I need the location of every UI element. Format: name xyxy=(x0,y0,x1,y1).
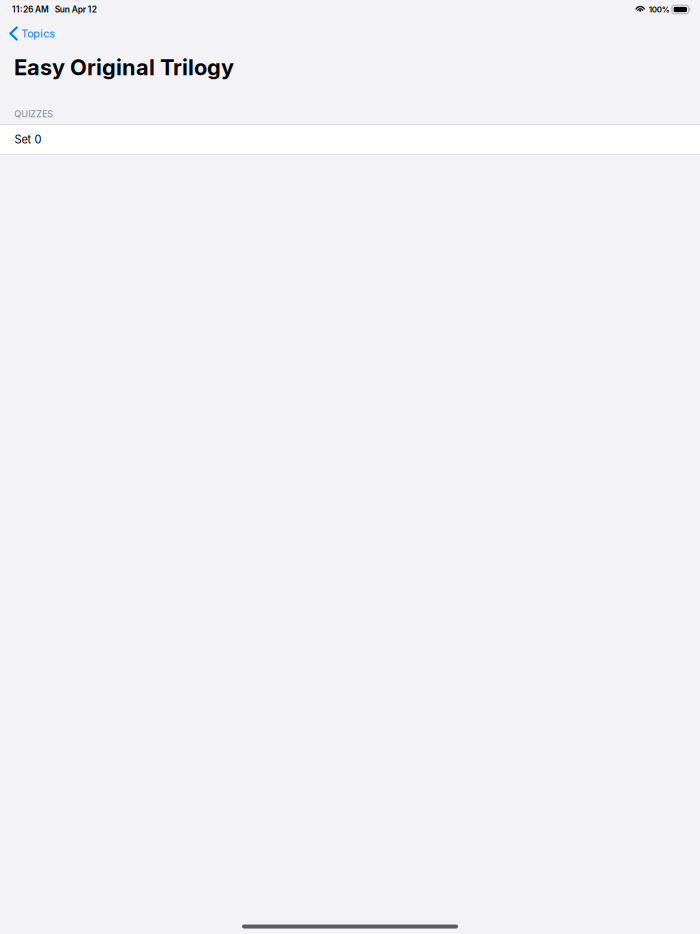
button[interactable]: Back to Topics xyxy=(0,22,65,44)
staticText: Topics xyxy=(21,27,55,40)
staticText: Easy Original Trilogy xyxy=(14,54,234,80)
staticText: QUIZZES xyxy=(14,108,53,119)
staticText: Sun Apr 12 xyxy=(55,4,97,15)
staticText: Set 0 xyxy=(15,133,42,146)
staticText: 100% xyxy=(649,5,670,14)
button[interactable]: Set 0 xyxy=(0,125,700,154)
staticText: 11:26 AM xyxy=(12,4,49,15)
